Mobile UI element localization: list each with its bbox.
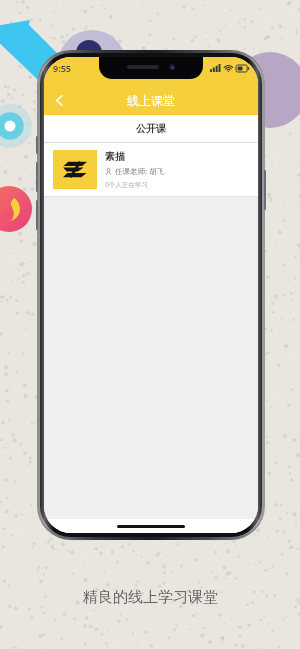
staticText: 0个人正在学习	[105, 180, 148, 189]
staticText: 9:55	[53, 62, 71, 74]
button[interactable]: Back	[44, 85, 74, 115]
staticText: 精良的线上学习课堂	[83, 588, 218, 607]
staticText: 公开课	[136, 122, 166, 135]
staticText: 线上课堂	[127, 93, 175, 108]
staticText: 任课老师: 胡飞	[115, 166, 164, 176]
button[interactable]: 公开课	[44, 115, 258, 142]
staticText: 素描	[105, 150, 125, 163]
button[interactable]: 素描	[44, 143, 258, 196]
